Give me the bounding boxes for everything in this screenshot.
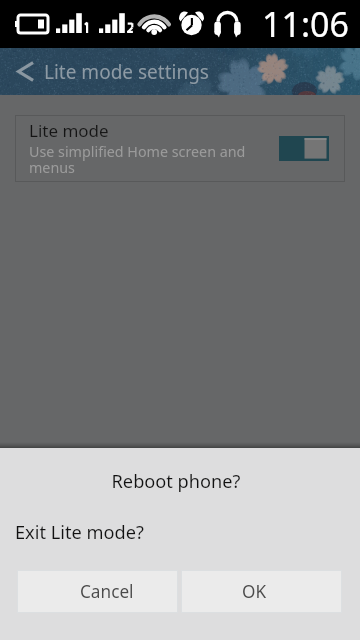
- staticText: OK: [242, 580, 267, 603]
- staticText: Cancel: [80, 580, 134, 603]
- button[interactable]: Lite mode switch: [279, 136, 329, 161]
- staticText: Use simplified Home screen and menus: [29, 142, 261, 177]
- staticText: Exit Lite mode?: [15, 520, 144, 545]
- button[interactable]: Back: [0, 48, 44, 95]
- staticText: Lite mode settings: [44, 59, 209, 85]
- staticText: Reboot phone?: [0, 469, 352, 494]
- staticText: 11:06: [262, 1, 349, 47]
- button[interactable]: OK: [182, 571, 341, 612]
- staticText: Lite mode: [29, 119, 109, 142]
- button[interactable]: Cancel: [18, 571, 177, 612]
- button[interactable]: Lite mode: [15, 115, 345, 182]
